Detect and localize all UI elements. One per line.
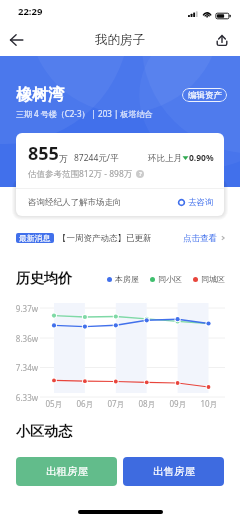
staticText: 06月 xyxy=(70,398,100,409)
staticText: 6.33w xyxy=(0,392,38,403)
button[interactable]: Share xyxy=(209,27,235,53)
staticText: 9.37w xyxy=(0,303,38,314)
button[interactable]: 出租房屋 xyxy=(16,457,117,486)
staticText: 05月 xyxy=(39,398,69,409)
staticText: 855 xyxy=(28,141,59,166)
staticText: 22:29 xyxy=(18,5,43,18)
staticText: 点击查看 xyxy=(183,233,217,244)
staticText: 08月 xyxy=(132,398,162,409)
staticText: 本房屋 xyxy=(115,274,139,284)
staticText: 万 xyxy=(59,153,68,164)
staticText: 最新消息 xyxy=(19,233,51,243)
staticText: 87244元/平 xyxy=(74,152,119,164)
staticText: 同小区 xyxy=(158,274,182,284)
staticText: 估值参考范围812万 - 898万 xyxy=(28,168,133,180)
staticText: 小区动态 xyxy=(16,423,72,441)
staticText: 橡树湾 xyxy=(16,85,64,105)
staticText: 07月 xyxy=(101,398,131,409)
staticText: ? xyxy=(139,170,142,178)
button[interactable]: 编辑资产 xyxy=(182,88,227,102)
staticText: 历史均价 xyxy=(16,270,72,288)
staticText: 编辑资产 xyxy=(188,90,222,101)
staticText: 0.90% xyxy=(189,152,214,164)
button[interactable]: 去咨询 xyxy=(178,197,214,208)
staticText: 出租房屋 xyxy=(46,465,88,478)
button[interactable]: 最新消息 xyxy=(16,228,226,248)
staticText: 环比上月 xyxy=(148,153,182,164)
staticText: 8.36w xyxy=(0,333,38,344)
staticText: 09月 xyxy=(163,398,193,409)
staticText: 出售房屋 xyxy=(153,465,195,478)
staticText: 咨询经纪人了解市场走向 xyxy=(28,197,122,208)
staticText: 去咨询 xyxy=(188,197,214,208)
staticText: 7.34w xyxy=(0,362,38,373)
staticText: 10月 xyxy=(194,398,224,409)
staticText: 三期 4 号楼（C2-3） | 203 | 板塔结合 xyxy=(16,108,153,119)
staticText: 【一周资产动态】已更新 xyxy=(58,233,152,244)
button[interactable]: 出售房屋 xyxy=(123,457,224,486)
staticText: 同城区 xyxy=(201,274,225,284)
button[interactable]: Back xyxy=(2,26,30,54)
staticText: 我的房子 xyxy=(95,32,145,48)
